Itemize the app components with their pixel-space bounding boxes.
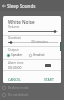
staticText: Volume (8, 25, 20, 29)
button[interactable]: Headset (29, 53, 45, 57)
staticText: 30 minutes (31, 40, 48, 44)
staticText: Alarm time (8, 61, 24, 65)
button[interactable]: Bedtime mode (0, 84, 64, 91)
staticText: START (44, 77, 54, 82)
button[interactable]: Do not disturb (0, 91, 64, 98)
button[interactable]: Slider (3, 41, 61, 44)
button[interactable]: Speaker (7, 53, 23, 57)
button[interactable]: START (44, 77, 54, 82)
button[interactable]: 00:30:00 (8, 65, 22, 70)
staticText: CANCEL (8, 77, 21, 82)
staticText: Bedtime mode (8, 86, 29, 90)
staticText: Duration (8, 36, 22, 40)
staticText: White Noise (8, 19, 35, 25)
staticText: Do not disturb (8, 93, 29, 97)
staticText: Speaker (11, 53, 23, 57)
button[interactable]: Slider (3, 30, 61, 33)
button[interactable]: Toggle (45, 64, 51, 67)
staticText: Output (8, 48, 19, 52)
staticText: Headset (33, 53, 45, 57)
button[interactable]: CANCEL (8, 77, 21, 82)
button[interactable]: Back (0, 0, 7, 11)
staticText: Sleep Sounds (7, 3, 36, 9)
